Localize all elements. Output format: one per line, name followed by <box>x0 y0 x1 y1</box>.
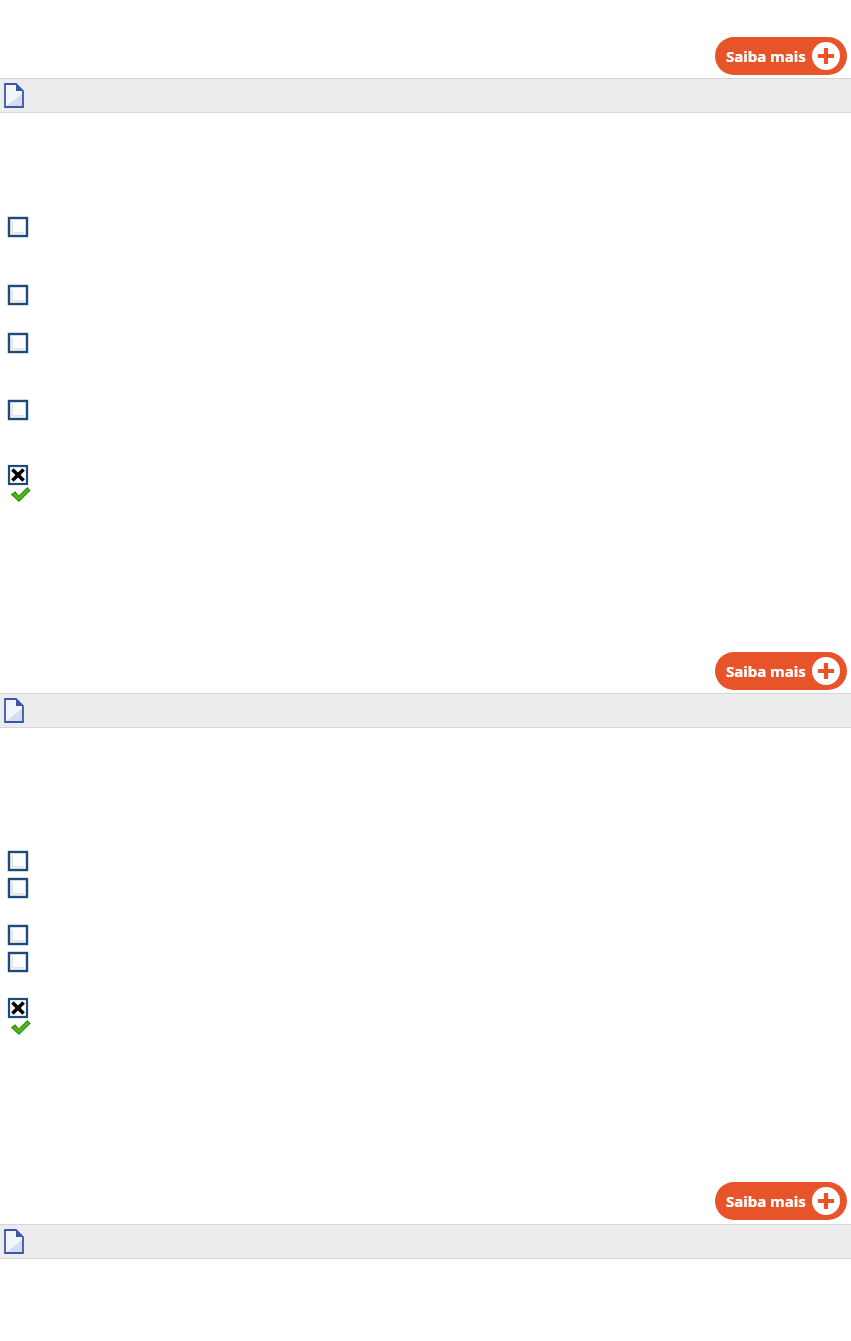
staticText: Saiba mais <box>726 661 806 681</box>
button[interactable]: Checked, remove <box>9 466 27 484</box>
button[interactable]: Saiba mais <box>715 652 847 690</box>
button[interactable]: Document <box>0 693 851 728</box>
button[interactable]: Saiba mais <box>715 1182 847 1220</box>
button[interactable]: Document <box>4 1229 24 1254</box>
button[interactable]: Checkbox <box>9 953 27 971</box>
button[interactable]: Checkbox <box>9 926 27 944</box>
button[interactable]: Document <box>0 1224 851 1259</box>
button[interactable]: Checkbox <box>9 286 27 304</box>
button[interactable]: Document <box>4 698 24 723</box>
button[interactable]: Confirmed <box>11 487 30 502</box>
button[interactable]: Checkbox <box>9 334 27 352</box>
button[interactable]: Document <box>4 83 24 108</box>
button[interactable]: Checkbox <box>9 401 27 419</box>
staticText: Saiba mais <box>726 46 806 66</box>
button[interactable]: Checked, remove <box>9 999 27 1017</box>
button[interactable]: Checkbox <box>9 879 27 897</box>
button[interactable]: Checkbox <box>9 852 27 870</box>
button[interactable]: Document <box>0 78 851 113</box>
staticText: Saiba mais <box>726 1191 806 1211</box>
button[interactable]: Saiba mais <box>715 37 847 75</box>
button[interactable]: Confirmed <box>11 1020 30 1035</box>
button[interactable]: Checkbox <box>9 218 27 236</box>
